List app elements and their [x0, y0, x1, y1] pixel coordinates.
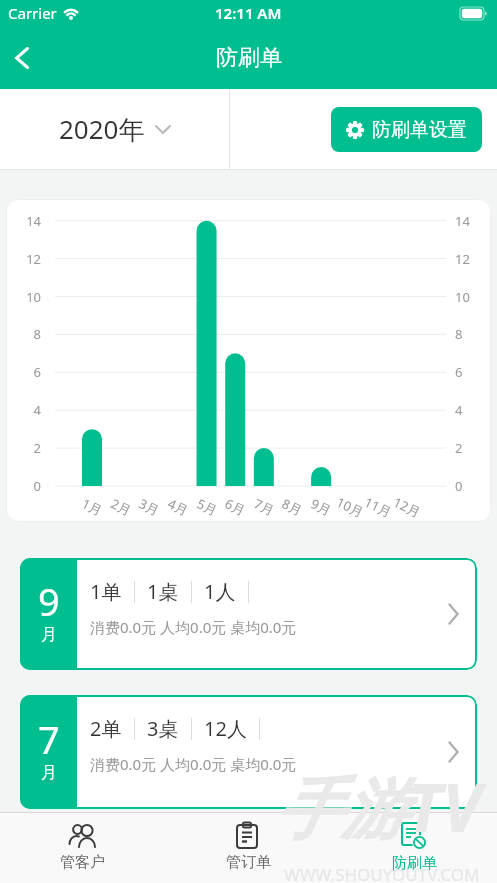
staticText: 7 — [38, 713, 60, 765]
button[interactable]: 管客户 — [0, 813, 165, 883]
staticText: 4 — [11, 401, 41, 419]
staticText: 10 — [11, 288, 41, 306]
staticText: 5月 — [194, 494, 221, 520]
button[interactable]: 管订单 — [165, 813, 331, 883]
staticText: 防刷单设置 — [372, 118, 467, 142]
button[interactable] — [0, 36, 44, 80]
staticText: 2 — [11, 439, 41, 457]
staticText: 手游TV — [275, 761, 482, 851]
staticText: 3桌 — [147, 715, 179, 742]
staticText: 8 — [455, 325, 485, 343]
staticText: 管客户 — [60, 853, 105, 872]
staticText: 2020年 — [59, 111, 145, 147]
staticText: 14 — [455, 212, 485, 230]
staticText: 11月 — [361, 493, 394, 521]
staticText: 4 — [455, 401, 485, 419]
staticText: 12:11 AM — [215, 3, 282, 23]
button[interactable]: 2020年 — [0, 89, 229, 169]
button[interactable]: 9 — [20, 558, 477, 670]
staticText: 0 — [11, 477, 41, 495]
staticText: 防刷单 — [392, 854, 437, 873]
staticText: 14 — [11, 212, 41, 230]
staticText: 月 — [41, 763, 57, 783]
button[interactable]: 防刷单 — [331, 813, 497, 883]
staticText: 管订单 — [226, 853, 271, 872]
staticText: 6 — [455, 363, 485, 381]
staticText: 12人 — [204, 715, 247, 742]
staticText: 12月 — [390, 493, 423, 521]
staticText: 12 — [455, 250, 485, 268]
button[interactable]: 防刷单设置 — [331, 107, 482, 152]
staticText: 消费0.0元 人均0.0元 桌均0.0元 — [90, 617, 297, 637]
button[interactable]: 7 — [20, 695, 477, 809]
staticText: 8月 — [279, 494, 306, 520]
staticText: 防刷单 — [216, 44, 282, 72]
staticText: 3月 — [136, 494, 163, 520]
staticText: 8 — [11, 325, 41, 343]
staticText: 1单 — [90, 578, 122, 605]
staticText: WWW.SHOUYOUTV.COM — [284, 863, 480, 883]
staticText: 10 — [455, 288, 485, 306]
staticText: 2月 — [108, 494, 135, 520]
staticText: 4月 — [165, 494, 192, 520]
staticText: 9 — [38, 575, 60, 627]
staticText: 2 — [455, 439, 485, 457]
staticText: Carrier — [8, 3, 57, 23]
staticText: 9月 — [308, 494, 335, 520]
staticText: 7月 — [251, 494, 278, 520]
staticText: 1人 — [204, 578, 236, 605]
staticText: 10月 — [333, 493, 366, 521]
staticText: 6月 — [222, 494, 249, 520]
staticText: 月 — [41, 625, 57, 645]
staticText: 6 — [11, 363, 41, 381]
staticText: 2单 — [90, 715, 122, 742]
staticText: 1月 — [79, 494, 106, 520]
staticText: 12 — [11, 250, 41, 268]
staticText: 0 — [455, 477, 485, 495]
staticText: 1桌 — [147, 578, 179, 605]
staticText: 消费0.0元 人均0.0元 桌均0.0元 — [90, 754, 297, 774]
